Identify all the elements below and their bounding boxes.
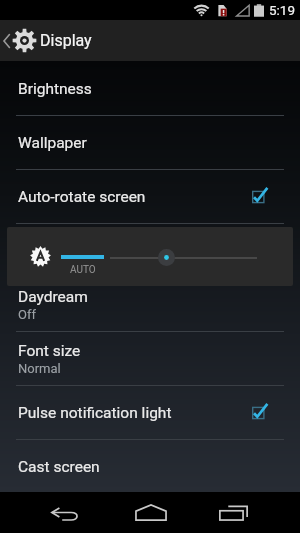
button[interactable]: Navigate up: [0, 20, 300, 61]
button[interactable]: Brightness: [7, 227, 293, 286]
button[interactable]: Toggle setting: [252, 403, 268, 423]
staticText: Display: [40, 31, 92, 50]
button[interactable]: Pulse notification light: [0, 386, 300, 440]
button[interactable]: Daydream: [0, 278, 300, 332]
staticText: Auto-rotate screen: [18, 188, 146, 206]
button[interactable]: Brightness: [0, 62, 300, 116]
button[interactable]: Font size: [0, 332, 300, 386]
staticText: Sleep: [18, 234, 57, 252]
staticText: After 1 minute of inactivity: [18, 253, 171, 268]
staticText: Pulse notification light: [18, 404, 172, 422]
staticText: Wallpaper: [18, 134, 87, 152]
staticText: Daydream: [18, 288, 88, 306]
staticText: AUTO: [70, 264, 96, 276]
staticText: Normal: [18, 361, 61, 376]
button[interactable]: Wallpaper: [0, 116, 300, 170]
staticText: Brightness: [18, 80, 92, 98]
staticText: Cast screen: [18, 458, 100, 476]
staticText: 5:19: [269, 2, 296, 18]
button[interactable]: Recent apps: [195, 492, 271, 533]
button[interactable]: Toggle setting: [252, 187, 268, 207]
button[interactable]: Auto-rotate screen: [0, 170, 300, 224]
button[interactable]: Cast screen: [0, 440, 300, 493]
staticText: Off: [18, 307, 36, 322]
button[interactable]: Home: [113, 492, 189, 533]
button[interactable]: Sleep: [0, 224, 300, 278]
button[interactable]: Back: [27, 492, 103, 533]
staticText: Font size: [18, 342, 81, 360]
